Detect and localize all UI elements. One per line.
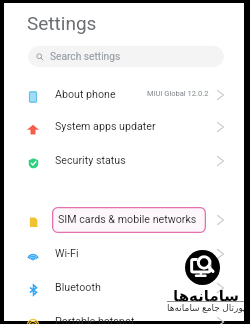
other: Open About phone — [215, 90, 224, 100]
button[interactable]: About phone — [4, 78, 244, 112]
staticText: System apps updater — [55, 120, 156, 133]
button[interactable]: Bluetooth — [4, 271, 244, 305]
other: Open SIM cards & mobile networks — [215, 215, 224, 225]
other: Open Portable hotspot — [215, 317, 224, 324]
staticText: Search settings — [50, 51, 121, 63]
other: Open Security status — [215, 156, 224, 166]
staticText: Security status — [55, 154, 126, 167]
staticText: Settings — [27, 12, 97, 34]
other: Open Wi-Fi — [215, 249, 224, 259]
other: Open System apps updater — [215, 122, 224, 132]
staticText: Wi-Fi — [55, 247, 79, 260]
button[interactable]: Security status — [4, 144, 244, 178]
button[interactable]: System apps updater — [4, 110, 244, 144]
other: Open Bluetooth — [215, 283, 224, 293]
button[interactable]: Wi-Fi — [4, 237, 244, 271]
staticText: پورتال جامع سامانه‌ها — [167, 301, 246, 313]
staticText: Bluetooth — [55, 281, 101, 294]
button[interactable]: SIM cards & mobile networks — [4, 203, 244, 237]
button[interactable]: Portable hotspot — [4, 305, 244, 324]
staticText: سامانه‌ها — [173, 287, 240, 304]
staticText: SIM cards & mobile networks — [58, 213, 197, 226]
staticText: MIUI Global 12.0.2 — [147, 89, 209, 98]
staticText: Portable hotspot — [55, 315, 135, 324]
staticText: About phone — [55, 88, 116, 101]
button[interactable]: Search settings — [28, 46, 224, 67]
